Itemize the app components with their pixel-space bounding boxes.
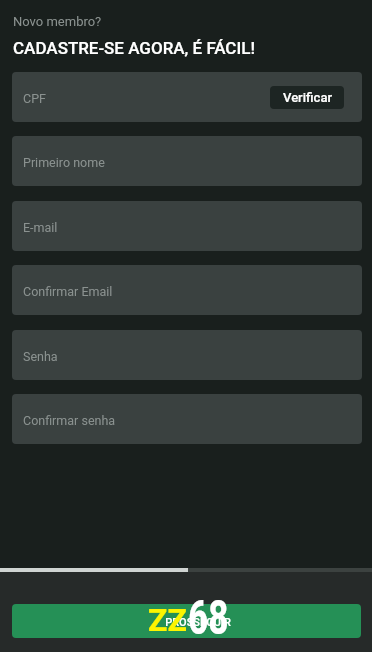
staticText: Senha: [23, 349, 58, 364]
button[interactable]: Verificar: [270, 86, 344, 109]
staticText: Verificar: [283, 90, 332, 105]
button[interactable]: Confirmar senha: [12, 394, 362, 444]
staticText: Confirmar senha: [23, 413, 116, 428]
button[interactable]: CPF: [12, 72, 362, 122]
staticText: 68: [188, 589, 229, 646]
staticText: CPF: [23, 91, 46, 106]
staticText: Primeiro nome: [23, 155, 105, 170]
button[interactable]: PROSSEGUIR: [12, 604, 361, 638]
button[interactable]: Primeiro nome: [12, 136, 362, 186]
staticText: CADASTRE-SE AGORA, É FÁCIL!: [13, 38, 255, 58]
button[interactable]: Senha: [12, 330, 362, 380]
button[interactable]: E-mail: [12, 201, 362, 251]
staticText: Confirmar Email: [23, 284, 113, 299]
staticText: E-mail: [23, 220, 58, 235]
staticText: ZZ: [148, 601, 187, 639]
button[interactable]: Confirmar Email: [12, 265, 362, 315]
staticText: Novo membro?: [13, 14, 102, 29]
staticText: PROSSEGUIR: [165, 616, 231, 629]
